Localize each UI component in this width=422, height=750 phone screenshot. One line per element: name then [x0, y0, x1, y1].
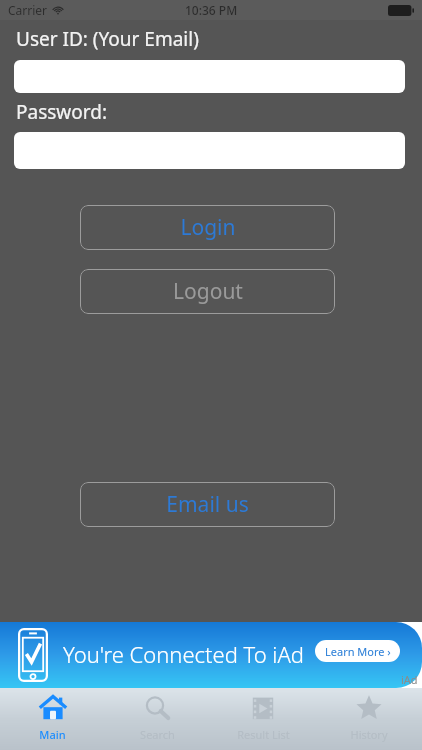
other: History [354, 694, 384, 724]
button[interactable]: Logout [80, 269, 335, 314]
staticText: Password: [16, 99, 108, 125]
staticText: Result List [237, 727, 290, 742]
button[interactable] [14, 60, 405, 93]
other: Connected [18, 628, 48, 682]
button[interactable]: Main [0, 688, 105, 750]
staticText: History [350, 727, 388, 742]
staticText: iAd [401, 672, 418, 687]
staticText: Login [180, 213, 236, 242]
staticText: Logout [173, 277, 243, 306]
staticText: Search [140, 727, 175, 742]
button[interactable]: History [316, 688, 422, 750]
staticText: User ID: (Your Email) [16, 26, 199, 52]
staticText: Main [39, 727, 66, 742]
staticText: You're Connected To iAd [63, 639, 305, 669]
button[interactable]: Result List [210, 688, 316, 750]
other: Result List [248, 694, 278, 724]
button[interactable]: Learn More › [315, 640, 400, 662]
button[interactable] [14, 132, 405, 169]
other: Search [143, 694, 173, 724]
button[interactable]: Connected [0, 622, 422, 688]
staticText: 10:36 PM [185, 2, 238, 18]
staticText: Learn More › [325, 644, 391, 659]
button[interactable]: Login [80, 205, 335, 250]
other: Main [38, 694, 68, 724]
staticText: Email us [166, 490, 249, 519]
button[interactable]: Email us [80, 482, 335, 527]
button[interactable]: Search [105, 688, 210, 750]
staticText: Carrier [8, 2, 48, 18]
